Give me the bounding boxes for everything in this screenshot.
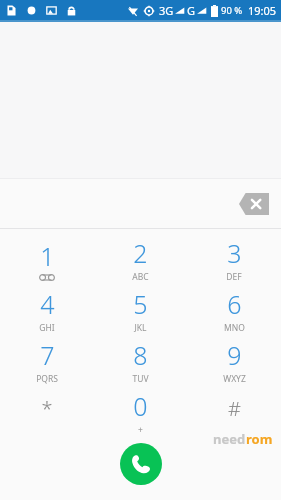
staticText: 7 (40, 338, 55, 372)
staticText: 0 (133, 389, 148, 423)
button[interactable]: 2 (93, 234, 187, 285)
button[interactable]: 4 (0, 285, 93, 336)
staticText: JKL (134, 322, 147, 334)
button[interactable]: Delete (237, 191, 271, 217)
button[interactable]: Call (120, 443, 162, 485)
button[interactable]: # (187, 387, 281, 438)
staticText: GHI (39, 322, 55, 334)
button[interactable]: 6 (187, 285, 281, 336)
button[interactable]: 8 (93, 336, 187, 387)
button[interactable]: 7 (0, 336, 93, 387)
staticText: 3 (227, 236, 242, 270)
staticText: * (41, 395, 53, 422)
staticText: 19:05 (248, 3, 277, 18)
staticText: 1 (40, 239, 55, 273)
button[interactable]: 9 (187, 336, 281, 387)
staticText: # (228, 395, 241, 422)
button[interactable]: 0 (93, 387, 187, 438)
staticText: rom (246, 430, 273, 448)
staticText: 9 (227, 338, 242, 372)
staticText: 4 (40, 287, 55, 321)
staticText: + (138, 424, 143, 436)
staticText: TUV (132, 373, 149, 385)
button[interactable]: * (0, 387, 93, 438)
staticText: PQRS (36, 373, 58, 385)
staticText: 8 (133, 338, 148, 372)
staticText: need (213, 430, 246, 448)
staticText: G (187, 3, 196, 18)
staticText: ABC (132, 271, 149, 283)
staticText: 90 % (221, 4, 243, 17)
staticText: MNO (224, 322, 245, 334)
staticText: 2 (133, 236, 148, 270)
staticText: 3G (159, 3, 174, 18)
button[interactable]: 5 (93, 285, 187, 336)
staticText: 5 (133, 287, 148, 321)
staticText: DEF (226, 271, 242, 283)
staticText: 6 (227, 287, 242, 321)
button[interactable]: 1 (0, 234, 93, 285)
button[interactable]: 3 (187, 234, 281, 285)
staticText: WXYZ (223, 373, 246, 385)
